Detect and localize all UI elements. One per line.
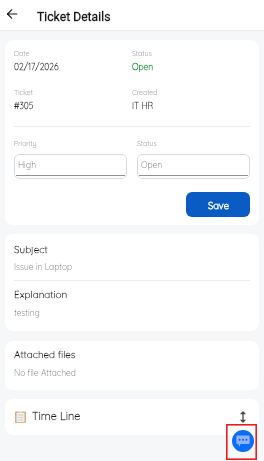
button[interactable]: Expand xyxy=(236,410,250,424)
staticText: Status xyxy=(132,49,152,58)
staticText: Created xyxy=(132,88,158,97)
staticText: Ticket xyxy=(14,88,33,97)
staticText: No file Attached xyxy=(14,367,76,378)
staticText: Ticket Details xyxy=(37,10,111,24)
staticText: Open xyxy=(141,159,163,170)
button[interactable]: High xyxy=(14,154,127,179)
button[interactable]: Save xyxy=(186,192,250,217)
staticText: Subject xyxy=(14,243,48,256)
staticText: Save xyxy=(208,199,229,211)
staticText: IT HR xyxy=(132,100,154,111)
button[interactable]: Time Line xyxy=(15,399,250,435)
staticText: Issue in Laptop xyxy=(14,261,73,272)
staticText: #305 xyxy=(14,100,34,111)
staticText: 02/17/2026 xyxy=(14,61,59,72)
staticText: Status xyxy=(137,139,157,148)
staticText: Date xyxy=(14,49,30,58)
staticText: testing xyxy=(14,307,40,318)
staticText: Explanation xyxy=(14,288,68,301)
staticText: Priority xyxy=(14,139,37,148)
staticText: Attached files xyxy=(14,348,76,361)
staticText: High xyxy=(18,159,36,170)
button[interactable]: Open xyxy=(137,154,250,179)
staticText: Open xyxy=(132,61,154,72)
button[interactable]: Chat xyxy=(232,430,254,452)
staticText: Time Line xyxy=(32,409,81,423)
button[interactable]: Back xyxy=(2,4,22,24)
